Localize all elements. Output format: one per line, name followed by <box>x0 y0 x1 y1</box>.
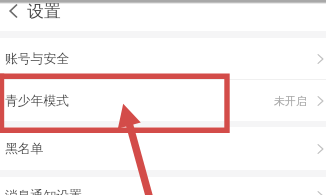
button[interactable]: 账号与安全 <box>0 38 326 79</box>
staticText: 账号与安全 <box>5 51 69 67</box>
button[interactable]: Back <box>0 0 27 22</box>
staticText: 青少年模式 <box>5 93 69 109</box>
button[interactable]: 青少年模式 <box>0 80 326 121</box>
staticText: 消息通知设置 <box>5 188 82 195</box>
staticText: 黑名单 <box>5 141 44 157</box>
button[interactable]: 消息通知设置 <box>0 177 326 195</box>
staticText: 设置 <box>27 1 61 22</box>
staticText: 未开启 <box>274 94 307 108</box>
button[interactable]: 黑名单 <box>0 127 326 170</box>
